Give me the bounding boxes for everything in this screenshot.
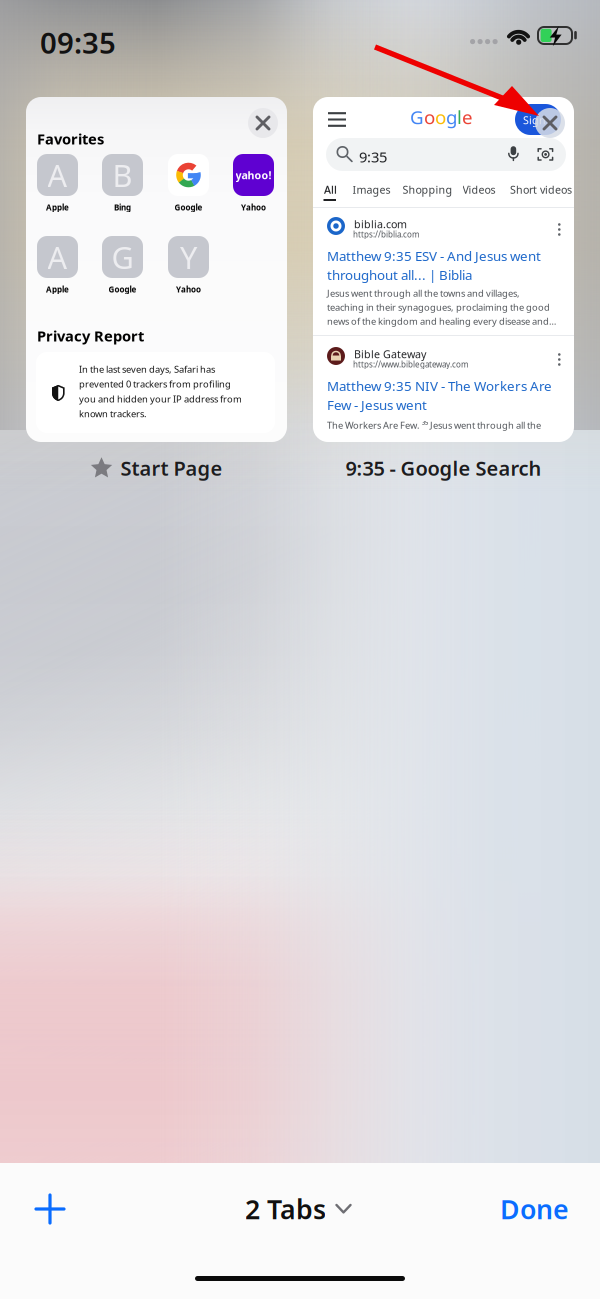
staticText: throughout all... | Biblia [327,266,472,284]
button[interactable]: Done [459,1187,569,1231]
staticText: Google [174,202,202,213]
staticText: Yahoo [241,202,266,213]
staticText: Bible Gateway [354,347,426,361]
staticText: All [324,182,337,197]
staticText: l [457,104,462,129]
staticText: Privacy Report [37,326,144,345]
button[interactable]: A [37,236,87,298]
staticText: o [424,104,435,129]
button[interactable]: Google [168,154,218,216]
staticText: Jesus went through all the towns and vil… [327,287,520,299]
staticText: e [462,104,473,129]
button[interactable]: Y [168,236,218,298]
staticText: Images [352,182,390,197]
button[interactable]: G [313,97,574,442]
staticText: news of the kingdom and healing every di… [327,315,556,327]
staticText: yahoo! [235,168,271,182]
staticText: 9:35 - Google Search [345,455,541,481]
staticText: Yahoo [176,284,201,295]
button[interactable]: Close Start Page tab [248,108,278,138]
staticText: G [111,237,133,277]
button[interactable]: yahoo! [233,154,283,216]
staticText: A [47,155,67,195]
button[interactable]: B [102,154,152,216]
staticText: known trackers. [79,407,147,420]
staticText: B [112,155,132,195]
button[interactable]: A [37,154,87,216]
button[interactable]: Favorites [26,97,287,442]
staticText: Start Page [120,455,222,481]
staticText: Matthew 9:35 ESV - And Jesus went [327,247,541,265]
staticText: biblia.com [354,217,407,231]
staticText: 9:35 [359,147,387,166]
staticText: G [410,104,424,129]
button[interactable]: New Tab [22,1181,78,1237]
button[interactable]: Start Page [26,452,287,484]
button[interactable]: G [102,236,152,298]
staticText: Favorites [37,129,104,148]
staticText: Y [180,237,197,277]
staticText: In the last seven days, Safari has [79,363,215,375]
staticText: 2 Tabs [245,1191,326,1227]
staticText: The Workers Are Few. ³⁵ Jesus went throu… [327,419,541,431]
staticText: prevented 0 trackers from profiling [79,378,231,390]
button[interactable]: 2 Tabs [245,1187,365,1231]
staticText: teaching in their synagogues, proclaimin… [327,301,550,313]
staticText: Short videos [510,182,572,197]
staticText: Few - Jesus went [327,396,427,414]
staticText: Videos [462,182,495,197]
staticText: https://www.biblegateway.com [353,359,468,370]
staticText: 09:35 [40,23,116,62]
staticText: o [435,104,446,129]
staticText: https://biblia.com [353,229,419,240]
staticText: you and hidden your IP address from [79,393,242,405]
staticText: Done [500,1191,569,1227]
staticText: Google [108,284,136,295]
staticText: Bing [114,202,131,213]
staticText: A [47,237,67,277]
staticText: Apple [46,284,69,295]
button[interactable]: 9:35 - Google Search [313,452,574,484]
staticText: g [446,104,457,129]
staticText: Sign [523,113,546,127]
staticText: Apple [46,202,69,213]
button[interactable]: Close Google Search tab [535,108,565,138]
staticText: Shopping [402,182,452,197]
staticText: Matthew 9:35 NIV - The Workers Are [327,377,552,395]
